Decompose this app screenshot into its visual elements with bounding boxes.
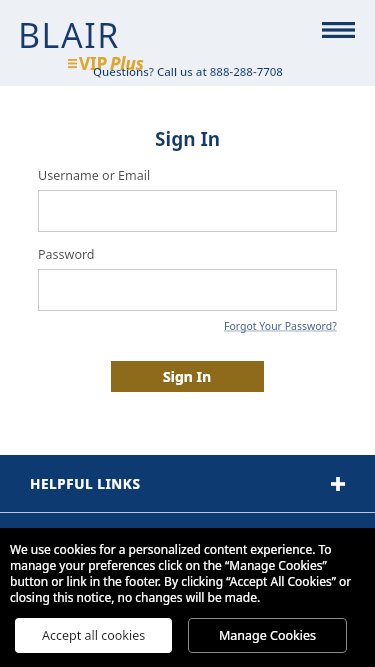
- button[interactable]: Username or Email field: [38, 190, 337, 232]
- button[interactable]: Manage Cookies: [188, 618, 347, 653]
- staticText: HELPFUL LINKS: [30, 475, 141, 493]
- staticText: Plus: [110, 52, 144, 75]
- staticText: Username or Email: [38, 167, 151, 184]
- button[interactable]: Blair VIP Plus home: [18, 12, 120, 81]
- button[interactable]: CUSTOMER SERVICE: [0, 571, 375, 628]
- staticText: Password: [38, 246, 95, 263]
- staticText: Sign In: [163, 367, 212, 386]
- button[interactable]: NAVIGATE: [0, 513, 375, 570]
- button[interactable]: Questions? Call us at 888-288-7708: [0, 64, 375, 80]
- staticText: NAVIGATE: [30, 533, 103, 551]
- button[interactable]: Forgot Your Password?: [224, 319, 337, 333]
- staticText: Forgot Your Password?: [224, 319, 337, 333]
- button[interactable]: Menu: [316, 16, 360, 44]
- button[interactable]: Password field: [38, 269, 337, 311]
- button[interactable]: HELPFUL LINKS: [0, 455, 375, 512]
- staticText: Questions? Call us at 888-288-7708: [93, 64, 283, 80]
- button[interactable]: Sign In: [111, 361, 264, 392]
- staticText: Sign In: [155, 126, 221, 152]
- button[interactable]: Accept all cookies: [15, 618, 172, 653]
- staticText: Manage Cookies: [219, 627, 317, 644]
- staticText: VIP: [79, 52, 108, 75]
- staticText: Accept all cookies: [42, 627, 146, 644]
- staticText: CUSTOMER SERVICE: [30, 591, 171, 609]
- staticText: BLAIR: [18, 12, 120, 58]
- staticText: We use cookies for a personalized conten…: [10, 541, 365, 605]
